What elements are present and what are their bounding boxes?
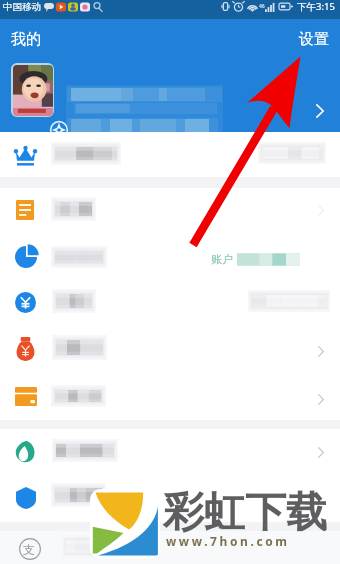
button[interactable] [0, 132, 340, 177]
staticText: 我的 [11, 30, 41, 49]
button[interactable]: Member badge [0, 60, 340, 132]
staticText: www.7hon.com [166, 533, 290, 549]
staticText: 下午3:15 [297, 0, 335, 13]
button[interactable]: 账户 [0, 234, 340, 280]
button[interactable]: 我的 [0, 26, 49, 53]
button[interactable] [0, 429, 340, 475]
staticText: 设置 [299, 30, 329, 49]
button[interactable] [0, 372, 340, 420]
button[interactable]: 设置 [289, 26, 340, 53]
staticText: 账户 [211, 252, 233, 266]
button[interactable]: Profile details [316, 104, 324, 118]
button[interactable]: 支 [0, 531, 340, 564]
staticText: 46 [259, 3, 265, 10]
button[interactable] [0, 475, 340, 522]
other: Member badge [49, 120, 69, 140]
staticText: 中国移动 [3, 1, 41, 13]
button[interactable] [0, 280, 340, 326]
staticText: 支 [23, 542, 35, 557]
staticText: 彩虹下载 [163, 487, 327, 539]
button[interactable] [0, 326, 340, 372]
button[interactable] [0, 188, 340, 233]
